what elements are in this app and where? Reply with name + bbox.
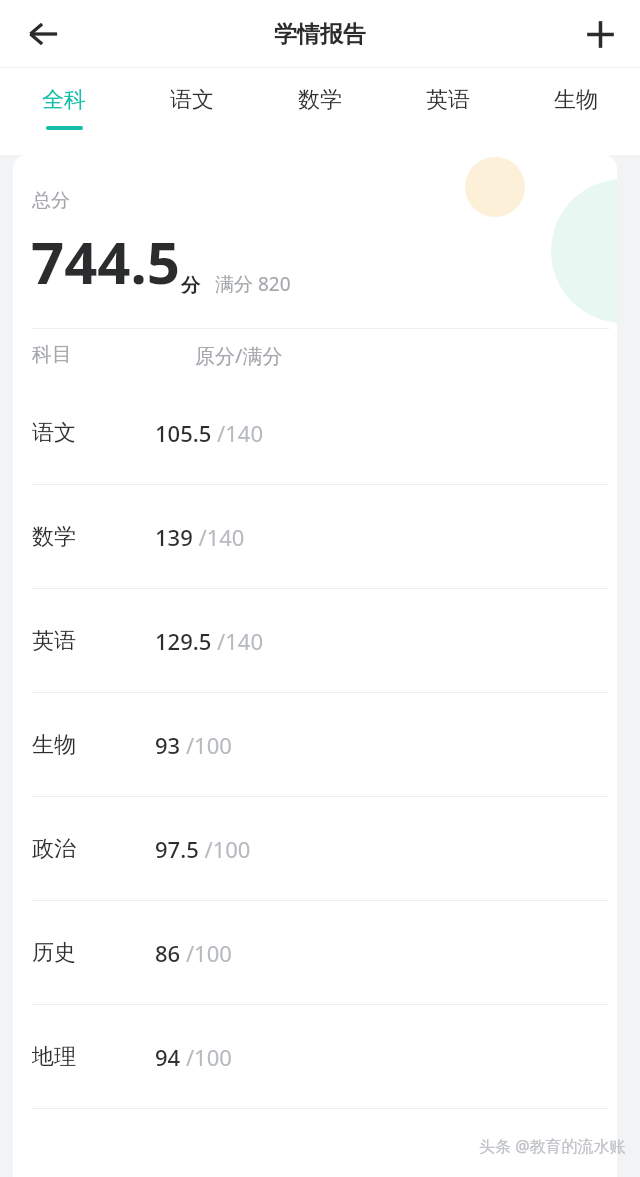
staticText: 地理 xyxy=(32,1043,155,1071)
staticText: 政治 xyxy=(32,835,155,863)
staticText: 生物 xyxy=(554,86,598,114)
button[interactable]: 英语 xyxy=(13,589,617,692)
staticText: 语文 xyxy=(170,86,214,114)
staticText: 科目 xyxy=(32,342,72,367)
staticText: 原分/满分 xyxy=(195,342,283,369)
button[interactable]: 政治 xyxy=(13,797,617,900)
button[interactable]: 数学 xyxy=(13,485,617,588)
staticText: 全科 xyxy=(42,86,86,114)
staticText: 学情报告 xyxy=(274,20,366,49)
button[interactable]: 语文 xyxy=(13,381,617,484)
staticText: 头条 @教育的流水账 xyxy=(479,1135,626,1157)
button[interactable]: 语文 xyxy=(128,68,256,155)
staticText: 生物 xyxy=(32,731,155,759)
staticText: 129.5 /140 xyxy=(155,626,263,656)
button[interactable]: 生物 xyxy=(13,693,617,796)
staticText: 97.5 /100 xyxy=(155,834,251,864)
staticText: 86 /100 xyxy=(155,938,232,968)
staticText: 94 /100 xyxy=(155,1042,232,1072)
staticText: 744.5 xyxy=(31,222,181,301)
button[interactable]: 全科 xyxy=(0,68,128,155)
button[interactable]: 生物 xyxy=(512,68,640,155)
staticText: 93 /100 xyxy=(155,730,232,760)
button[interactable]: Back xyxy=(12,3,74,65)
staticText: 语文 xyxy=(32,419,155,447)
staticText: 数学 xyxy=(32,523,155,551)
staticText: 满分 820 xyxy=(215,271,291,297)
staticText: 105.5 /140 xyxy=(155,418,263,448)
staticText: 历史 xyxy=(32,939,155,967)
button[interactable]: 数学 xyxy=(256,68,384,155)
staticText: 139 /140 xyxy=(155,522,245,552)
staticText: 分 xyxy=(181,274,200,298)
button[interactable]: Add report xyxy=(571,5,629,63)
staticText: 英语 xyxy=(426,86,470,114)
staticText: 数学 xyxy=(298,86,342,114)
staticText: 总分 xyxy=(32,189,70,213)
button[interactable]: 英语 xyxy=(384,68,512,155)
button[interactable]: 历史 xyxy=(13,901,617,1004)
staticText: 英语 xyxy=(32,627,155,655)
button[interactable]: 地理 xyxy=(13,1005,617,1108)
